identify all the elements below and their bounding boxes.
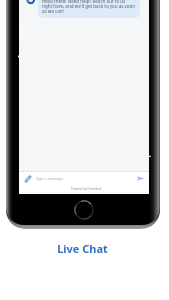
staticText: Hello there! Need help? Reach out to us … <box>42 0 136 14</box>
staticText: Live Chat <box>57 241 108 256</box>
button[interactable]: Send message <box>136 174 145 183</box>
button[interactable]: Home <box>74 200 94 220</box>
button[interactable]: Attach file <box>24 175 32 183</box>
button[interactable]: Attach file <box>19 172 149 185</box>
staticText: Powered by Freshdesk <box>71 187 102 191</box>
staticText: Type a message <box>36 176 63 181</box>
